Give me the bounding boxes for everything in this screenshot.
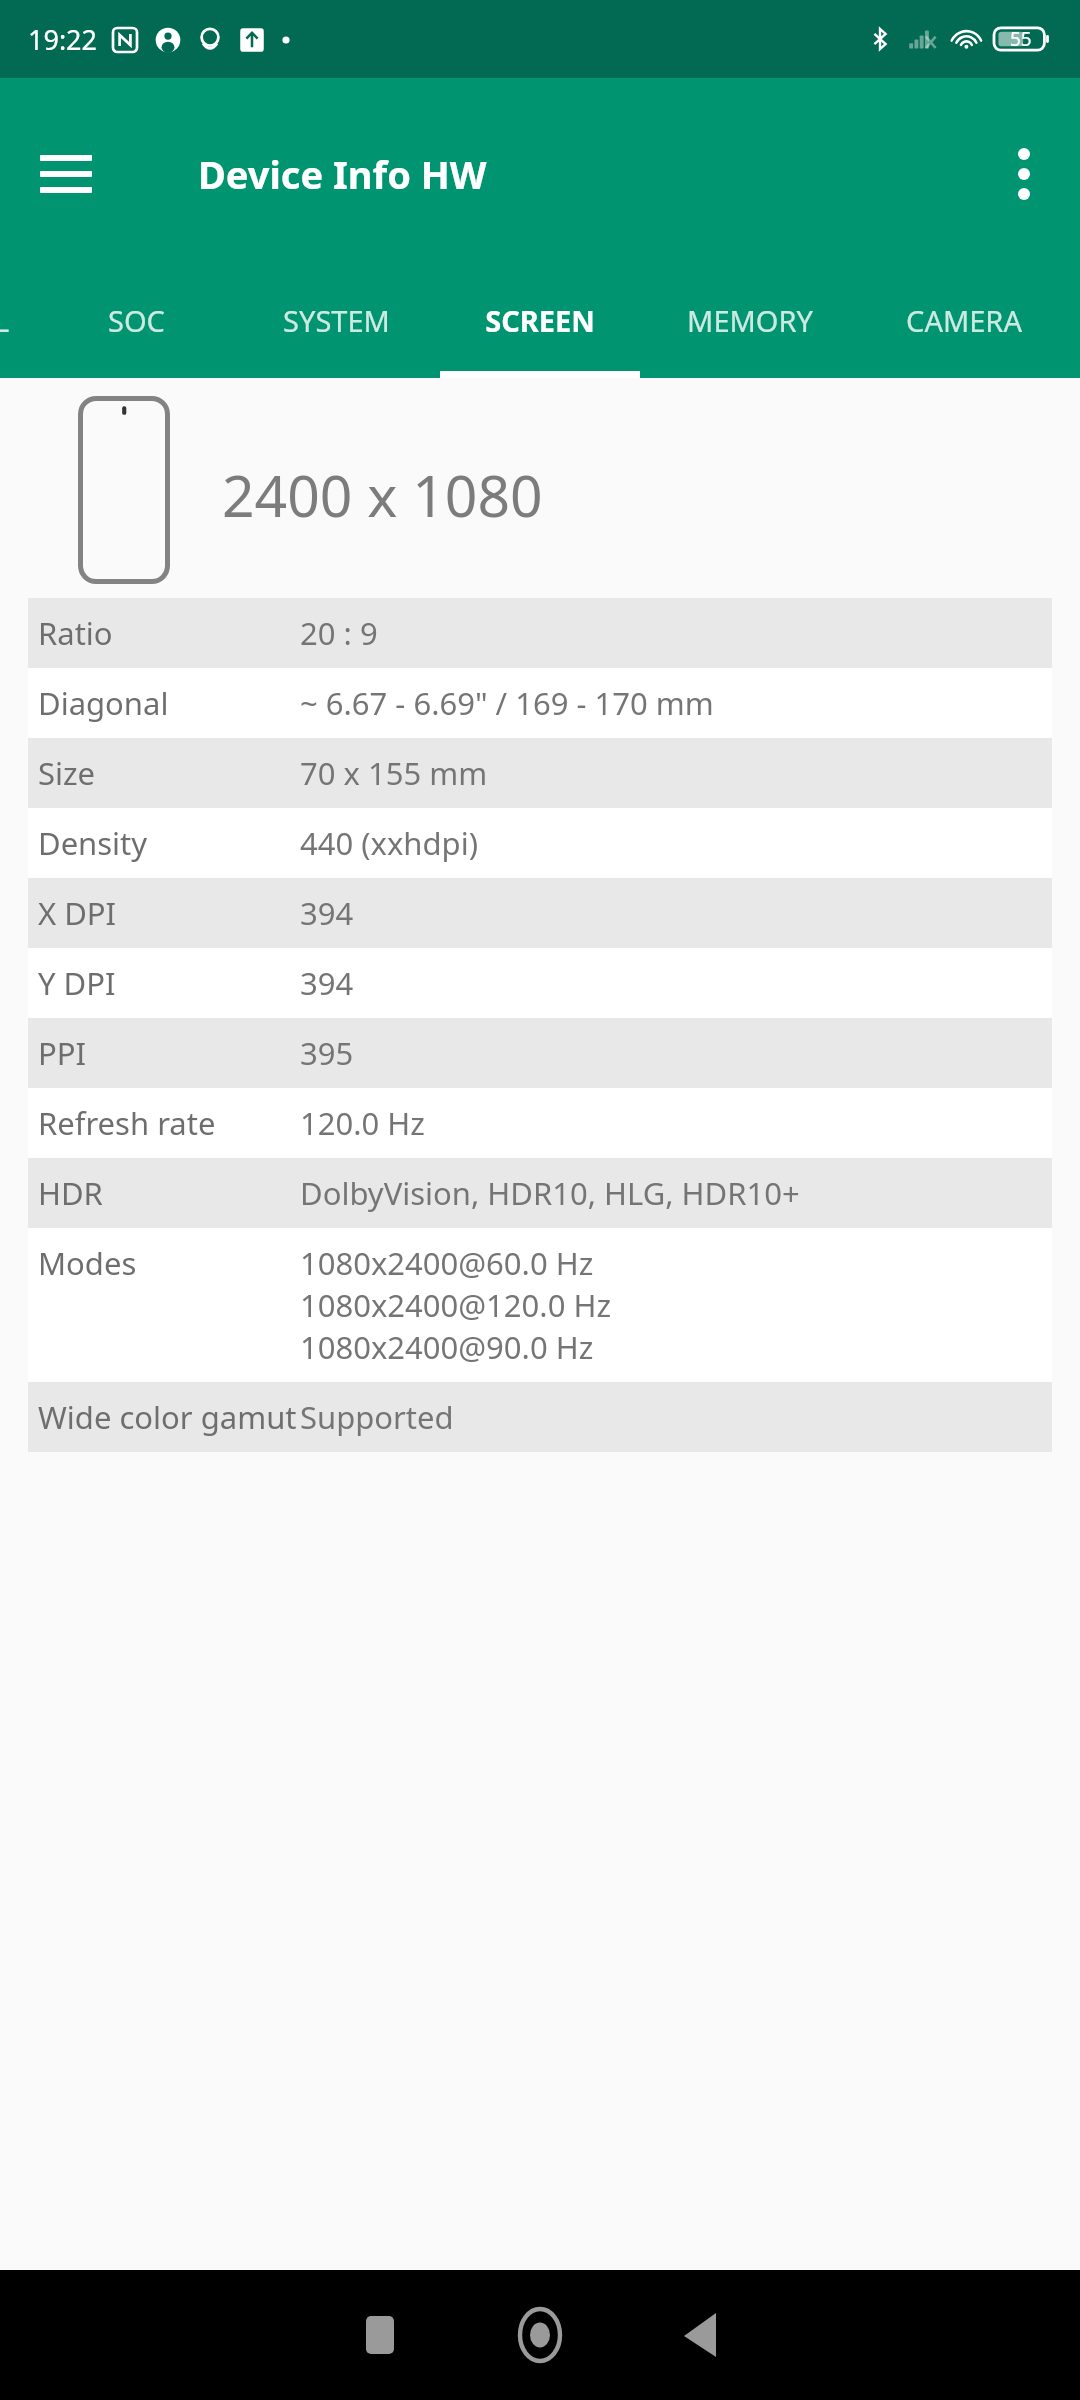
staticText: Ratio xyxy=(38,612,300,654)
staticText: 394 xyxy=(300,962,354,1004)
button[interactable]: CAMERA xyxy=(864,270,1064,378)
staticText: Density xyxy=(38,822,300,864)
staticText: Diagonal xyxy=(38,682,300,724)
staticText: 55 xyxy=(1010,26,1032,52)
button[interactable]: Home xyxy=(492,2287,588,2383)
staticText: X DPI xyxy=(38,892,300,934)
staticText: 2400 x 1080 xyxy=(222,456,543,534)
button[interactable]: PPI xyxy=(28,1018,1052,1088)
button[interactable]: Density xyxy=(28,808,1052,878)
button[interactable]: HDR xyxy=(28,1158,1052,1228)
staticText: 394 xyxy=(300,892,354,934)
staticText: PPI xyxy=(38,1032,300,1074)
staticText: 1080x2400@60.0 Hz xyxy=(300,1242,594,1284)
button[interactable]: Open navigation menu xyxy=(24,132,108,216)
button[interactable]: Ratio xyxy=(28,598,1052,668)
staticText: SOC xyxy=(108,301,165,340)
staticText: Y DPI xyxy=(38,962,300,1004)
button[interactable]: Recent apps xyxy=(332,2287,428,2383)
button[interactable]: Wide color gamut xyxy=(28,1382,1052,1452)
staticText: 1080x2400@120.0 Hz xyxy=(300,1284,611,1326)
button[interactable]: Diagonal xyxy=(28,668,1052,738)
staticText: Modes xyxy=(38,1242,300,1284)
staticText: Refresh rate xyxy=(38,1102,300,1144)
button[interactable]: Size xyxy=(28,738,1052,808)
button[interactable]: Back xyxy=(652,2287,748,2383)
staticText: Device Info HW xyxy=(198,148,487,200)
button[interactable]: SOC xyxy=(36,270,236,378)
staticText: Supported xyxy=(300,1396,454,1438)
button[interactable]: X DPI xyxy=(28,878,1052,948)
staticText: 1080x2400@90.0 Hz xyxy=(300,1326,594,1368)
staticText: SYSTEM xyxy=(283,301,390,340)
staticText: 20 : 9 xyxy=(300,612,378,654)
staticText: L xyxy=(0,301,10,340)
staticText: ~ 6.67 - 6.69" / 169 - 170 mm xyxy=(300,682,714,724)
staticText: HDR xyxy=(38,1172,300,1214)
button[interactable]: Modes xyxy=(28,1228,1052,1382)
staticText: Wide color gamut xyxy=(38,1396,300,1438)
button[interactable]: SCREEN xyxy=(440,270,640,378)
staticText: 395 xyxy=(300,1032,354,1074)
button[interactable]: Y DPI xyxy=(28,948,1052,1018)
button[interactable]: MEMORY xyxy=(650,270,850,378)
staticText: 440 (xxhdpi) xyxy=(300,822,478,864)
button[interactable]: Refresh rate xyxy=(28,1088,1052,1158)
staticText: SCREEN xyxy=(485,301,595,340)
staticText: MEMORY xyxy=(687,301,813,340)
staticText: 120.0 Hz xyxy=(300,1102,425,1144)
staticText: 70 x 155 mm xyxy=(300,752,488,794)
staticText: Size xyxy=(38,752,300,794)
staticText: DolbyVision, HDR10, HLG, HDR10+ xyxy=(300,1172,800,1214)
button[interactable]: More options xyxy=(982,132,1066,216)
button[interactable]: SYSTEM xyxy=(236,270,436,378)
staticText: CAMERA xyxy=(906,301,1022,340)
staticText: 19:22 xyxy=(28,21,98,58)
